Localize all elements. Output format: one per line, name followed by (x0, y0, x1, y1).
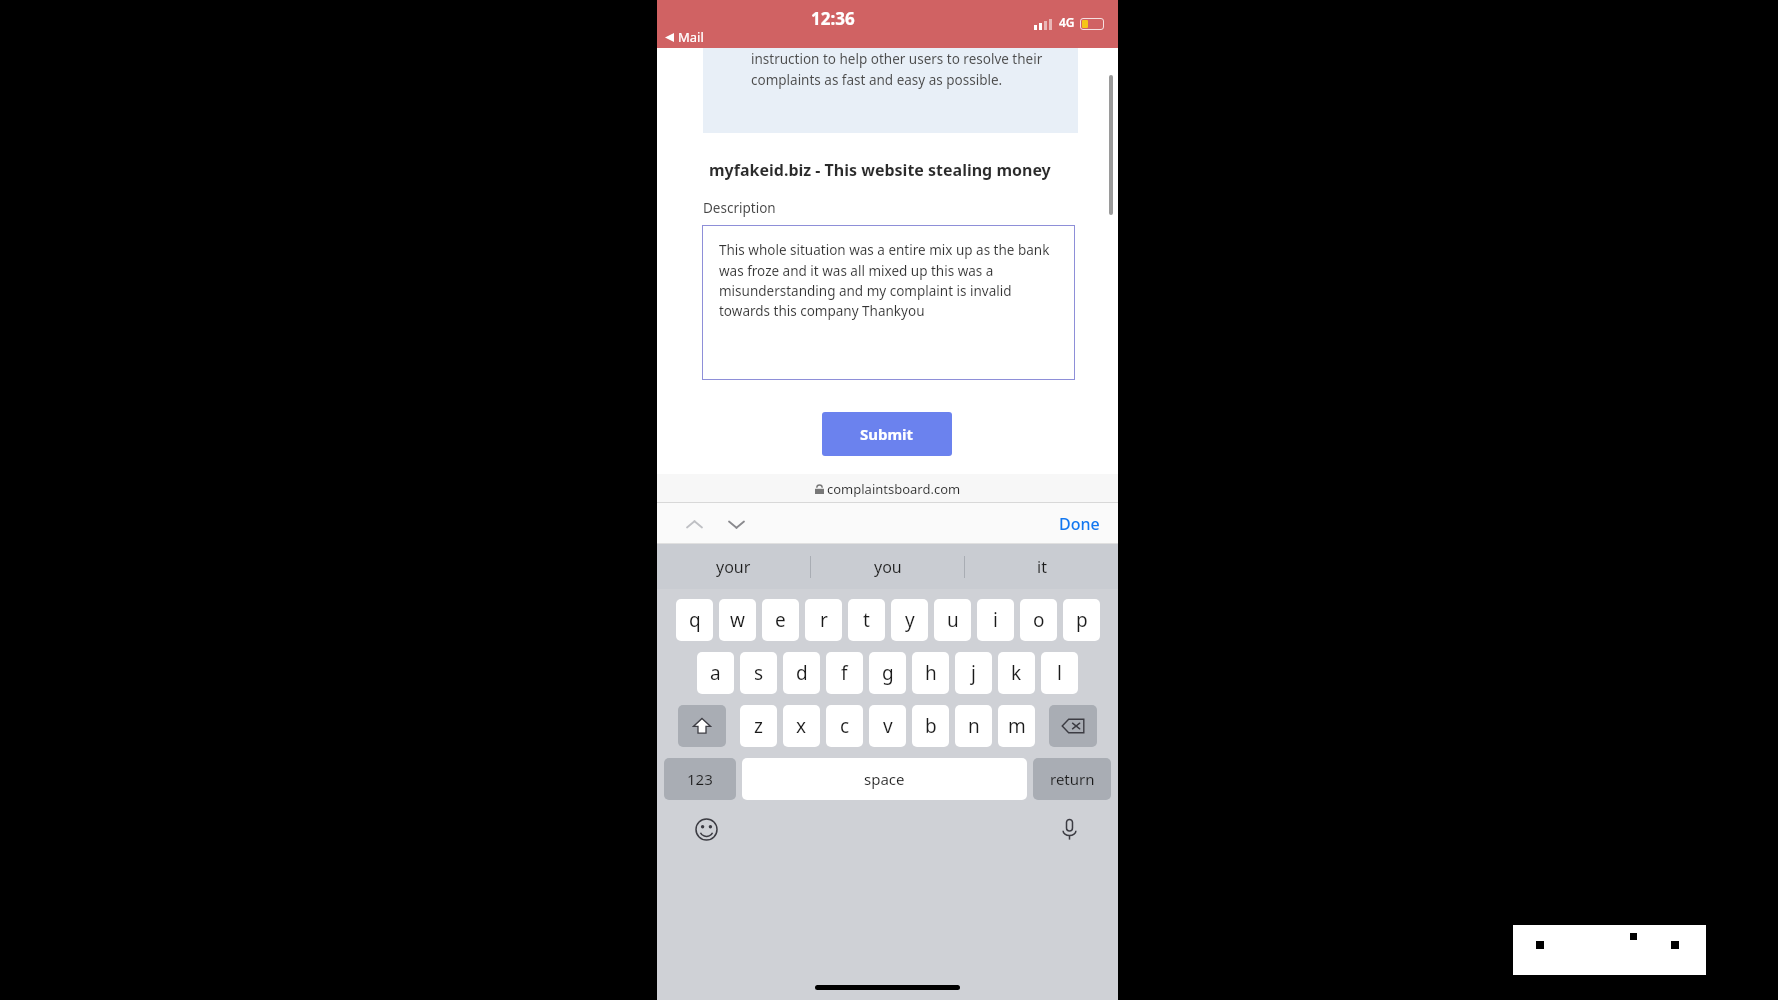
staticText: This whole situation was a entire mix up… (719, 241, 1061, 320)
staticText: l (1057, 660, 1062, 686)
button[interactable]: s (740, 652, 777, 694)
button[interactable]: i (977, 599, 1014, 641)
staticText: w (730, 607, 745, 633)
staticText: t (863, 607, 870, 633)
button[interactable]: b (912, 705, 949, 747)
button[interactable]: m (998, 705, 1035, 747)
button[interactable]: c (826, 705, 863, 747)
button[interactable]: u (934, 599, 971, 641)
button[interactable]: l (1041, 652, 1078, 694)
button[interactable]: z (740, 705, 777, 747)
staticText: e (775, 607, 786, 633)
button[interactable]: h (912, 652, 949, 694)
staticText: j (971, 660, 976, 686)
staticText: a (710, 660, 721, 686)
staticText: it (1037, 556, 1047, 578)
staticText: Submit (860, 424, 914, 444)
staticText: Mail (678, 28, 704, 46)
staticText: p (1076, 607, 1088, 633)
button[interactable]: return (1033, 758, 1111, 800)
staticText: q (689, 607, 701, 633)
staticText: s (754, 660, 764, 686)
staticText: 4G (1059, 14, 1075, 30)
staticText: o (1033, 607, 1045, 633)
staticText: n (968, 713, 980, 739)
staticText: c (840, 713, 850, 739)
staticText: x (796, 713, 807, 739)
button[interactable]: e (762, 599, 799, 641)
button[interactable]: Dictation (1054, 814, 1084, 844)
button[interactable]: t (848, 599, 885, 641)
staticText: u (947, 607, 959, 633)
staticText: k (1011, 660, 1022, 686)
staticText: myfakeid.biz - This website stealing mon… (709, 159, 1051, 181)
staticText: 123 (687, 769, 713, 789)
button[interactable]: your (657, 544, 810, 589)
staticText: Description (703, 199, 776, 217)
button[interactable]: x (783, 705, 820, 747)
button[interactable]: k (998, 652, 1035, 694)
button[interactable]: This whole situation was a entire mix up… (702, 225, 1075, 380)
staticText: Done (1059, 513, 1100, 535)
button[interactable]: d (783, 652, 820, 694)
button[interactable]: f (826, 652, 863, 694)
staticText: you (874, 556, 902, 578)
button[interactable]: Back to Mail (665, 28, 704, 46)
button[interactable]: complaintsboard.com (815, 480, 961, 498)
button[interactable]: it (965, 544, 1118, 589)
staticText: i (993, 607, 998, 633)
button[interactable]: p (1063, 599, 1100, 641)
button[interactable]: Backspace (1049, 705, 1097, 747)
button[interactable]: Done (1059, 513, 1100, 535)
button[interactable]: Next field (721, 509, 751, 539)
staticText: g (882, 660, 894, 686)
button[interactable]: q (676, 599, 713, 641)
button[interactable]: o (1020, 599, 1057, 641)
button[interactable]: y (891, 599, 928, 641)
button[interactable]: Previous field (679, 509, 709, 539)
staticText: return (1050, 769, 1095, 789)
staticText: your (716, 556, 751, 578)
button[interactable]: a (697, 652, 734, 694)
staticText: d (796, 660, 808, 686)
staticText: b (925, 713, 937, 739)
staticText: y (905, 607, 915, 633)
button[interactable]: j (955, 652, 992, 694)
button[interactable]: n (955, 705, 992, 747)
button[interactable]: you (811, 544, 964, 589)
staticText: h (925, 660, 937, 686)
staticText: complaintsboard.com (827, 480, 961, 498)
staticText: f (841, 660, 848, 686)
button[interactable]: g (869, 652, 906, 694)
button[interactable]: 123 (664, 758, 736, 800)
button[interactable]: Shift (678, 705, 726, 747)
staticText: 12:36 (811, 7, 855, 30)
staticText: v (883, 713, 893, 739)
staticText: space (864, 769, 905, 789)
staticText: z (754, 713, 763, 739)
staticText: m (1008, 713, 1026, 739)
button[interactable]: w (719, 599, 756, 641)
button[interactable]: Submit (822, 412, 952, 456)
button[interactable]: Emoji keyboard (691, 814, 721, 844)
button[interactable]: space (742, 758, 1027, 800)
staticText: instruction to help other users to resol… (751, 50, 1064, 89)
button[interactable]: v (869, 705, 906, 747)
button[interactable]: r (805, 599, 842, 641)
staticText: r (820, 607, 828, 633)
